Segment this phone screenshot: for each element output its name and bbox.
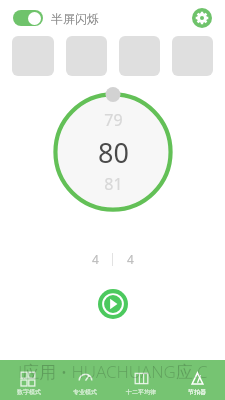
button[interactable]: Preset 4 [172,36,213,76]
staticText: 节拍器 [188,388,206,396]
button[interactable]: Half screen flash toggle [13,10,43,26]
button[interactable]: Note value 4 [113,249,147,269]
button[interactable]: 专业模式 [57,360,113,400]
staticText: 十二平均律 [126,388,156,396]
button[interactable]: Beats per measure 4 [78,249,112,269]
button[interactable]: Preset 2 [66,36,107,76]
staticText: 专业模式 [73,388,97,396]
button[interactable]: 十二平均律 [113,360,169,400]
button[interactable]: 数字模式 [0,360,57,400]
staticText: 4 [92,251,99,267]
button[interactable]: Tempo dial 80 BPM [52,91,174,213]
staticText: l应用 • HUACHUANG应.C [18,360,208,382]
staticText: 半屏闪烁 [51,11,99,26]
staticText: 81 [104,173,123,195]
staticText: 4 [127,251,134,267]
button[interactable]: Play [98,289,128,319]
button[interactable]: Preset 3 [119,36,160,76]
button[interactable]: Preset 1 [12,36,54,76]
staticText: 80 [98,134,129,171]
button[interactable]: Settings [192,8,212,28]
button[interactable]: 节拍器 [169,360,225,400]
staticText: 数字模式 [17,388,41,396]
staticText: 79 [104,109,123,131]
